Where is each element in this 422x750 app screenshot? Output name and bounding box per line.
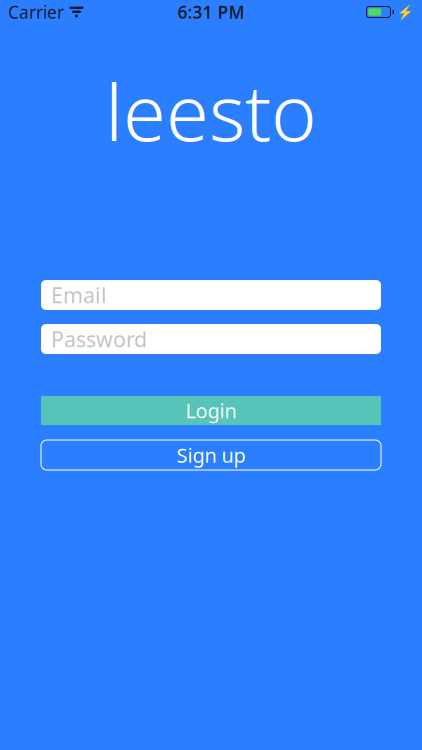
- staticText: Password: [51, 325, 147, 353]
- staticText: 6:31 PM: [177, 0, 244, 23]
- staticText: Login: [185, 397, 236, 424]
- button[interactable]: Sign up: [41, 440, 381, 470]
- staticText: leesto: [105, 60, 317, 162]
- staticText: ⚡: [397, 4, 414, 20]
- button[interactable]: Login: [41, 396, 381, 425]
- staticText: Email: [51, 281, 107, 309]
- staticText: Carrier: [8, 0, 64, 23]
- staticText: Sign up: [176, 442, 245, 468]
